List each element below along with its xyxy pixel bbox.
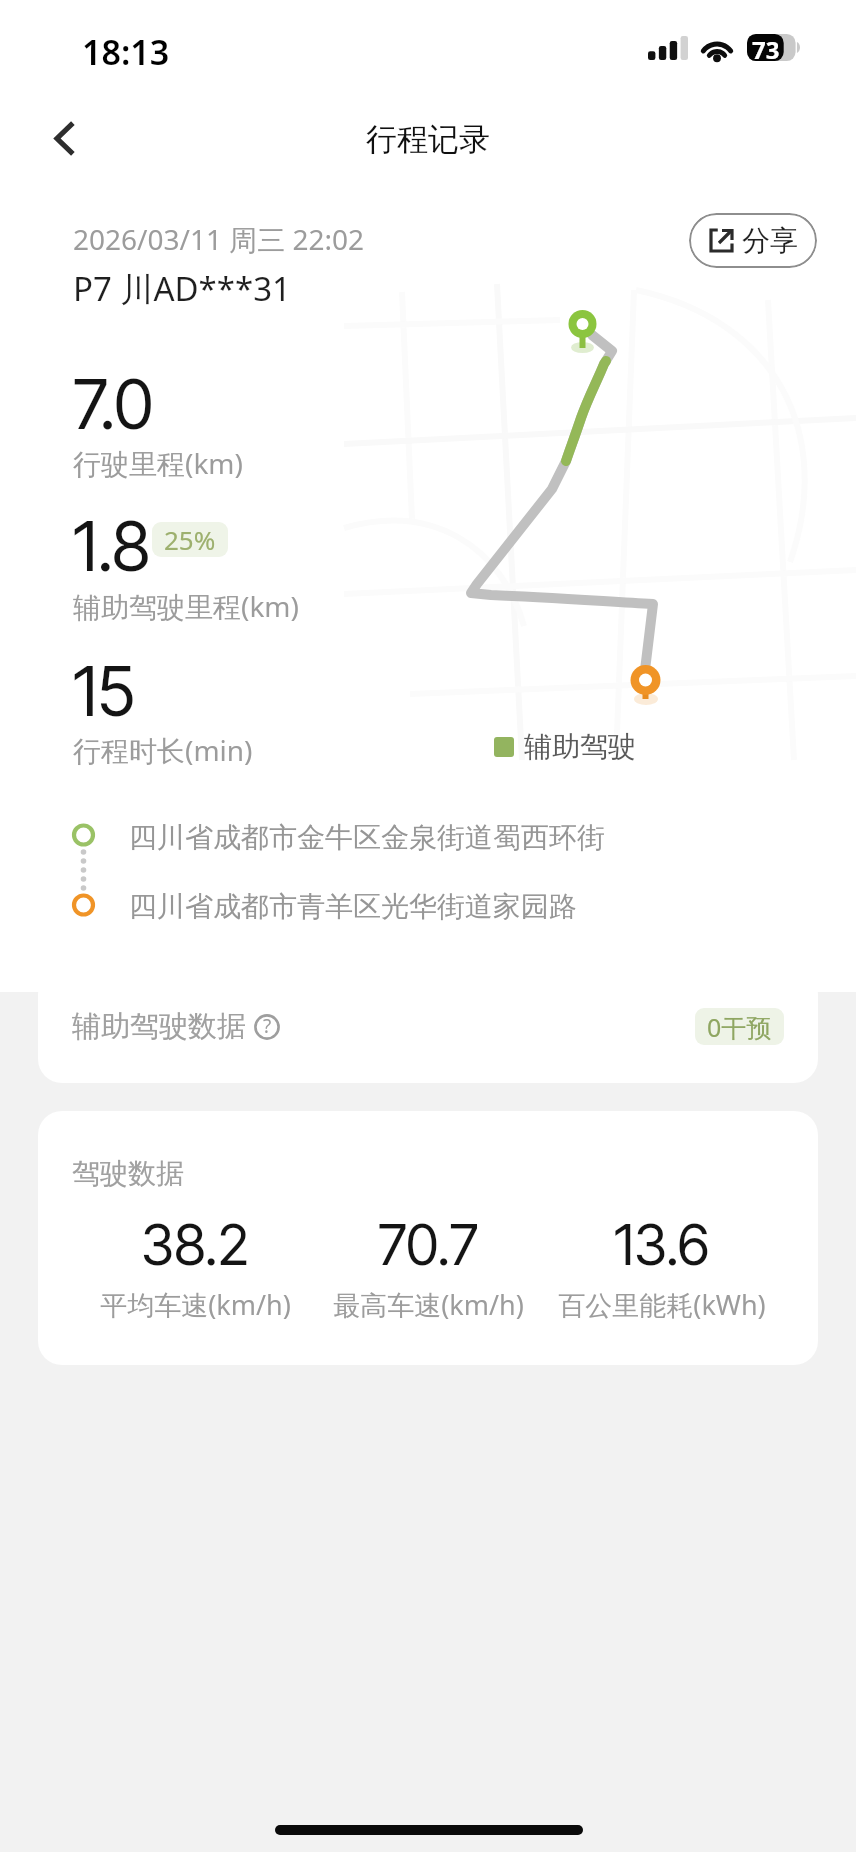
staticText: 2026/03/11 周三 22:02 [73, 220, 365, 258]
staticText: 行程时长(min) [73, 731, 253, 769]
staticText: 25% [164, 522, 216, 557]
staticText: 行驶里程(km) [73, 444, 243, 482]
staticText: 13.6 [614, 1211, 710, 1279]
staticText: 四川省成都市金牛区金泉街道蜀西环街 [129, 820, 605, 855]
staticText: 驾驶数据 [72, 1156, 184, 1191]
staticText: 行程记录 [366, 120, 490, 159]
staticText: 1.8 [73, 505, 151, 587]
staticText: 百公里能耗(kWh) [558, 1286, 766, 1323]
staticText: 73 [752, 33, 780, 60]
staticText: 最高车速(km/h) [333, 1286, 524, 1323]
staticText: 平均车速(km/h) [100, 1286, 291, 1323]
button[interactable]: 辅助驾驶数据 [38, 970, 818, 1083]
staticText: 四川省成都市青羊区光华街道家园路 [129, 889, 577, 924]
staticText: 辅助驾驶 [524, 729, 636, 764]
staticText: 辅助驾驶里程(km) [73, 587, 299, 625]
staticText: 38.2 [141, 1211, 250, 1279]
staticText: 18:13 [82, 29, 170, 75]
button[interactable]: 分享 [689, 213, 817, 268]
staticText: 辅助驾驶数据 [72, 1008, 246, 1045]
staticText: 分享 [742, 223, 798, 258]
staticText: 0干预 [707, 1010, 772, 1044]
staticText: 70.7 [378, 1211, 479, 1279]
staticText: 15 [73, 650, 135, 732]
staticText: P7 川AD***31 [73, 266, 291, 311]
staticText: ? [263, 1013, 272, 1039]
button[interactable]: Back [31, 105, 97, 171]
staticText: 7.0 [73, 363, 154, 445]
